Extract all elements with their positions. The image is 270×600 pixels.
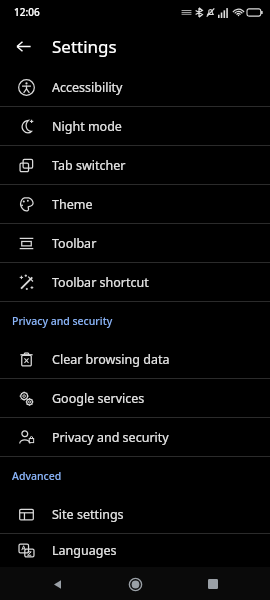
staticText: Toolbar [52,235,97,252]
button[interactable]: Toolbar [0,224,270,262]
staticText: Accessibility [52,79,123,96]
staticText: Settings [52,35,117,58]
staticText: Privacy and security [52,429,169,446]
staticText: Privacy and security [12,314,113,328]
staticText: Night mode [52,118,122,135]
button[interactable]: Back [44,571,70,597]
button[interactable]: Languages [0,534,270,567]
button[interactable]: Night mode [0,107,270,145]
staticText: Google services [52,390,145,407]
button[interactable]: Home [122,571,148,597]
staticText: Clear browsing data [52,351,170,368]
staticText: Tab switcher [52,157,126,174]
button[interactable]: Site settings [0,495,270,533]
button[interactable]: Privacy and security [0,418,270,456]
button[interactable]: Toolbar shortcut [0,263,270,301]
button[interactable]: Tab switcher [0,146,270,184]
staticText: Advanced [12,469,62,483]
staticText: Languages [52,542,117,559]
button[interactable]: Theme [0,185,270,223]
staticText: Toolbar shortcut [52,274,149,291]
staticText: Theme [52,196,93,213]
staticText: 12:06 [14,5,40,19]
button[interactable]: Back [9,32,37,60]
button[interactable]: Clear browsing data [0,340,270,378]
button[interactable]: Recent apps [200,571,226,597]
button[interactable]: Google services [0,379,270,417]
button[interactable]: Accessibility [0,68,270,106]
staticText: Site settings [52,506,124,523]
